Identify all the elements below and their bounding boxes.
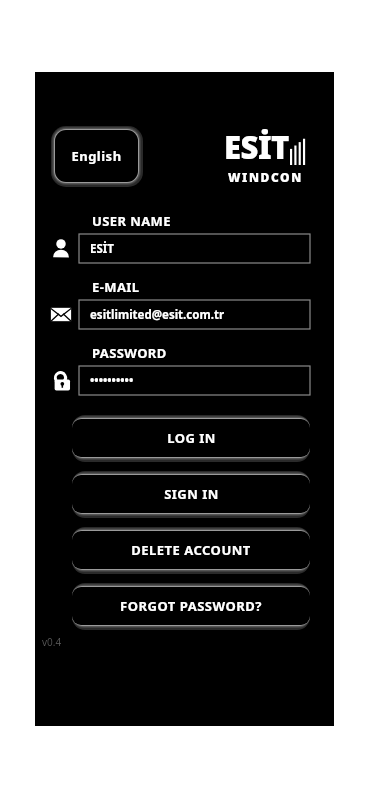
staticText: PASSWORD: [92, 344, 167, 362]
staticText: E-MAIL: [92, 278, 140, 296]
button[interactable]: English: [50, 125, 143, 187]
staticText: WINDCON: [228, 169, 303, 185]
staticText: ESİT: [224, 126, 289, 168]
button[interactable]: LOG IN: [72, 414, 310, 462]
staticText: SIGN IN: [164, 485, 219, 503]
staticText: esitlimited@esit.com.tr: [90, 307, 225, 323]
button[interactable]: DELETE ACCOUNT: [72, 526, 310, 574]
staticText: FORGOT PASSWORD?: [120, 597, 262, 615]
staticText: English: [71, 147, 122, 165]
other: E-mail: [42, 300, 79, 329]
other: User name: [42, 234, 79, 263]
button[interactable]: esitlimited@esit.com.tr: [79, 300, 310, 329]
button[interactable]: ••••••••••: [79, 366, 310, 395]
staticText: ••••••••••: [90, 373, 134, 389]
other: Password: [42, 366, 79, 395]
staticText: v0.4: [42, 635, 62, 649]
button[interactable]: FORGOT PASSWORD?: [72, 582, 310, 630]
button[interactable]: ESİT: [79, 234, 310, 263]
button[interactable]: SIGN IN: [72, 470, 310, 518]
staticText: DELETE ACCOUNT: [131, 541, 251, 559]
staticText: USER NAME: [92, 212, 171, 230]
staticText: ESİT: [90, 241, 114, 257]
staticText: LOG IN: [167, 429, 216, 447]
